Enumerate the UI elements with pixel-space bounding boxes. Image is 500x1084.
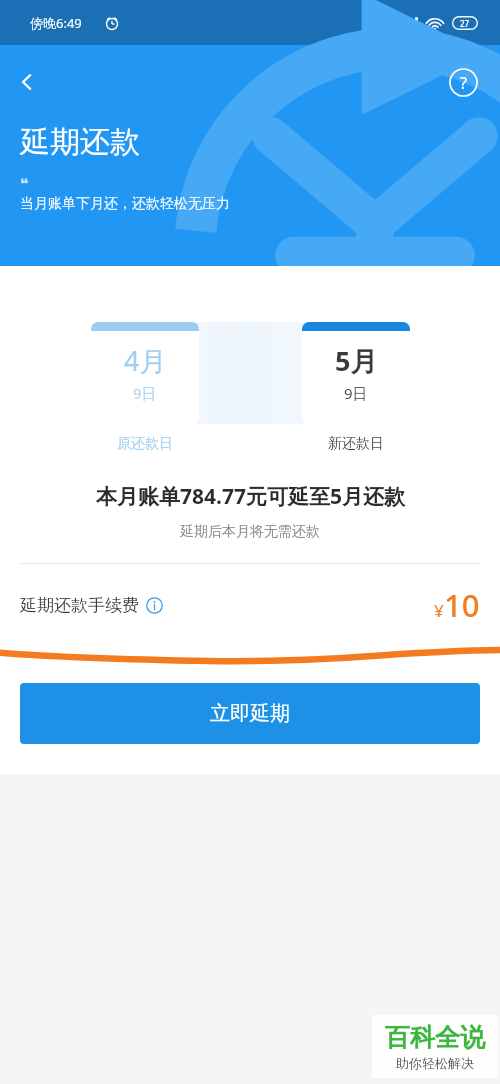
staticText: 延期还款手续费 (20, 595, 139, 616)
staticText: 27 (460, 18, 470, 29)
staticText: 5月 (335, 342, 378, 379)
staticText: 助你轻松解决 (396, 1055, 474, 1071)
staticText: 当月账单下月还，还款轻松无压力 (20, 195, 230, 213)
staticText: 延期还款 (20, 123, 140, 161)
button[interactable]: Help (444, 63, 482, 101)
staticText: ¥ (434, 599, 444, 622)
staticText: 傍晚6:49 (30, 14, 82, 32)
staticText: 延期后本月将无需还款 (180, 523, 320, 541)
staticText: 本月账单784.77元可延至5月还款 (96, 482, 405, 511)
staticText: ? (460, 72, 467, 94)
staticText: 新还款日 (328, 435, 384, 453)
staticText: 百科全说 (385, 1022, 485, 1053)
staticText: 10 (444, 584, 480, 626)
staticText: 4月 (124, 342, 167, 379)
staticText: 9日 (344, 383, 368, 403)
button[interactable]: 延期还款手续费 (0, 564, 500, 646)
button[interactable]: 立即延期 (20, 683, 480, 744)
button[interactable]: Back (8, 63, 46, 101)
staticText: ❝ (20, 175, 29, 192)
staticText: 立即延期 (210, 701, 290, 726)
staticText: 原还款日 (117, 435, 173, 453)
staticText: 9日 (133, 383, 157, 403)
